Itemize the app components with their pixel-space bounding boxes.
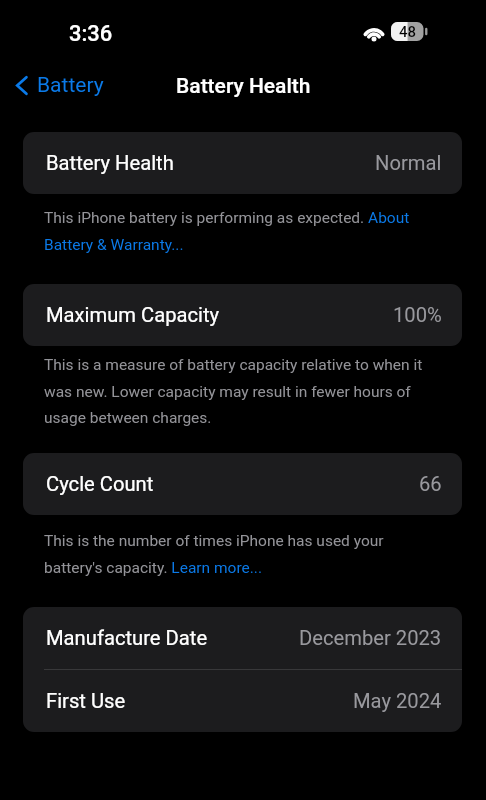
- button[interactable]: Cycle Count: [23, 453, 462, 515]
- staticText: 66: [419, 472, 442, 496]
- staticText: First Use: [46, 689, 126, 713]
- button[interactable]: First Use: [23, 670, 462, 732]
- staticText: Manufacture Date: [46, 626, 208, 650]
- staticText: Battery Health: [46, 151, 174, 175]
- other: Wi-Fi: [362, 22, 386, 41]
- staticText: This is a measure of battery capacity re…: [44, 356, 434, 426]
- staticText: Battery Health: [176, 74, 311, 99]
- other: Battery 48 percent: [391, 22, 429, 41]
- staticText: Maximum Capacity: [46, 303, 220, 327]
- staticText: Cycle Count: [46, 472, 154, 496]
- staticText: Battery: [37, 73, 104, 98]
- button[interactable]: Battery Health: [23, 132, 462, 194]
- staticText: This is the number of times iPhone has u…: [44, 532, 434, 576]
- button[interactable]: Battery: [6, 69, 114, 102]
- staticText: This iPhone battery is performing as exp…: [44, 209, 434, 253]
- button[interactable]: Manufacture Date: [23, 607, 462, 669]
- staticText: Normal: [375, 151, 442, 175]
- staticText: 3:36: [69, 21, 113, 47]
- staticText: December 2023: [299, 626, 442, 650]
- staticText: 100%: [393, 303, 442, 327]
- button[interactable]: Maximum Capacity: [23, 284, 462, 346]
- staticText: 48: [399, 23, 417, 41]
- staticText: May 2024: [353, 689, 442, 713]
